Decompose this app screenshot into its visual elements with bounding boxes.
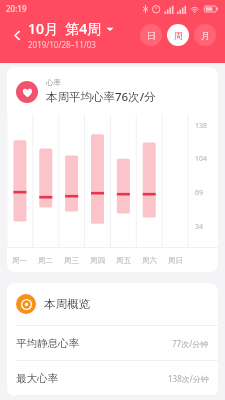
staticText: 138次/分钟	[168, 373, 209, 384]
button[interactable]: 10月 第4周	[28, 19, 114, 50]
staticText: 77次/分钟	[172, 338, 209, 349]
button[interactable]: 日	[140, 24, 162, 46]
staticText: 本周平均心率76次/分	[46, 89, 156, 105]
staticText: 周五	[116, 256, 131, 265]
staticText: 10月 第4周	[28, 19, 102, 38]
staticText: 69	[195, 188, 204, 198]
staticText: 周六	[142, 256, 157, 265]
button[interactable]: 周	[167, 24, 189, 46]
button[interactable]: 月	[194, 24, 216, 46]
button[interactable]: Back	[7, 25, 27, 45]
staticText: 周	[174, 30, 183, 41]
staticText: 周一	[12, 256, 27, 265]
staticText: 最大心率	[16, 372, 58, 385]
button[interactable]: 平均静息心率	[7, 325, 218, 360]
staticText: 20:19	[6, 3, 27, 14]
staticText: 104	[195, 154, 208, 164]
staticText: 本周概览	[44, 297, 90, 311]
button[interactable]: 最大心率	[7, 360, 218, 395]
staticText: 138	[195, 121, 208, 131]
staticText: 平均静息心率	[16, 337, 79, 350]
staticText: 周三	[64, 256, 79, 265]
staticText: 34	[195, 222, 204, 232]
staticText: 心率	[46, 78, 61, 87]
staticText: 2019/10/28–11/03	[28, 39, 96, 50]
staticText: 周四	[90, 256, 105, 265]
staticText: 周二	[38, 256, 53, 265]
staticText: 日	[147, 30, 156, 41]
staticText: 周日	[168, 256, 183, 265]
staticText: 月	[201, 30, 210, 41]
